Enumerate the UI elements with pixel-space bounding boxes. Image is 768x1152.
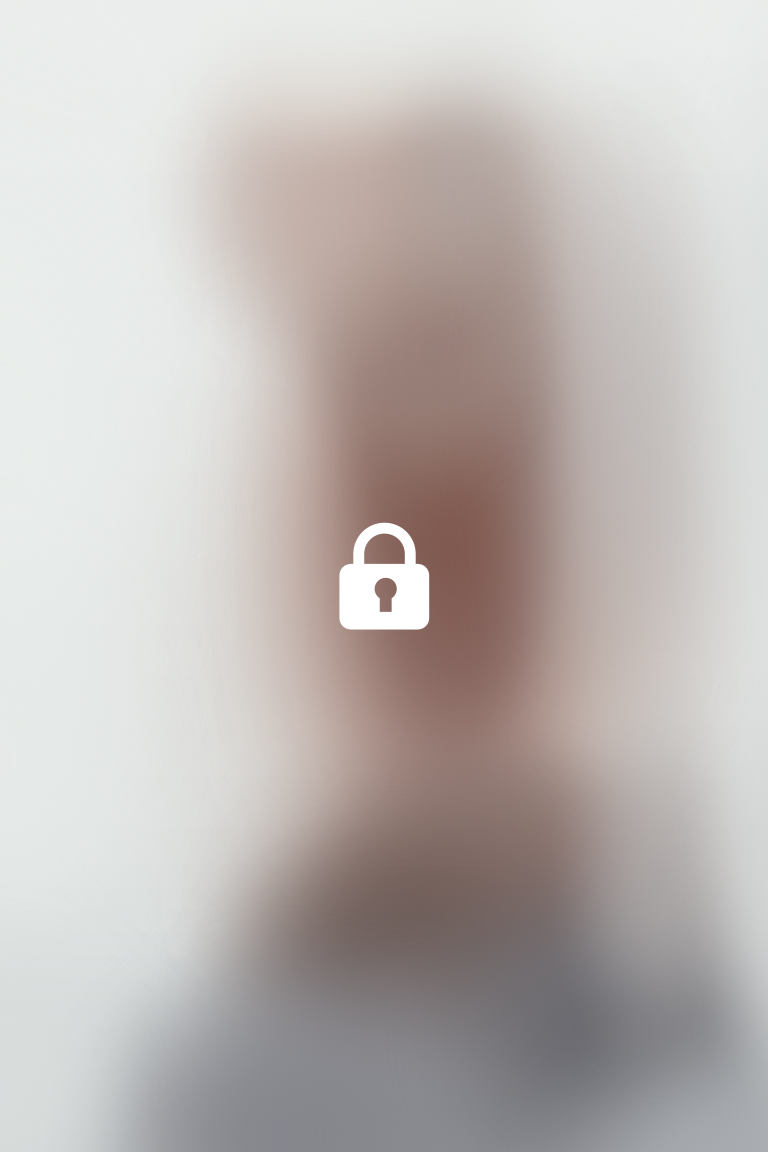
button[interactable]: Unlock to view this content [324,511,444,641]
